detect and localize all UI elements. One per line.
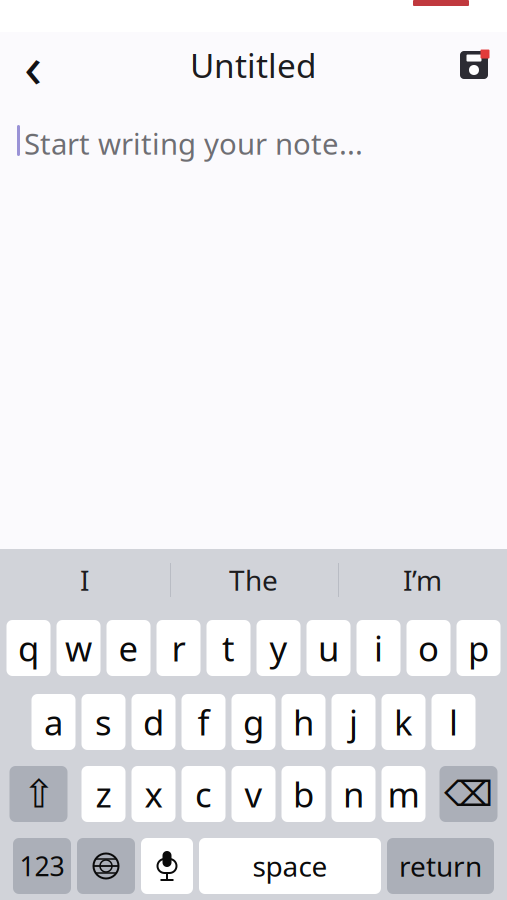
staticText: I’m	[403, 561, 442, 599]
button[interactable]: Delete	[439, 766, 497, 822]
button[interactable]: Shift	[9, 766, 67, 822]
button[interactable]: y	[256, 620, 300, 676]
button[interactable]: Start writing your note...	[0, 98, 507, 549]
staticText: ⇧	[22, 772, 54, 816]
staticText: p	[468, 625, 489, 671]
button[interactable]: o	[406, 620, 450, 676]
button[interactable]: f	[181, 694, 225, 750]
button[interactable]: q	[6, 620, 50, 676]
staticText: o	[418, 625, 439, 671]
staticText: I	[80, 561, 89, 599]
staticText: a	[44, 699, 63, 745]
staticText: s	[95, 699, 112, 745]
button[interactable]: x	[131, 766, 175, 822]
button[interactable]: I	[0, 549, 169, 611]
staticText: f	[197, 699, 209, 745]
staticText: The	[229, 561, 278, 599]
button[interactable]: n	[331, 766, 375, 822]
staticText: x	[144, 771, 162, 817]
button[interactable]: m	[381, 766, 425, 822]
button[interactable]: l	[431, 694, 475, 750]
button[interactable]: I’m	[338, 549, 507, 611]
staticText: d	[143, 699, 164, 745]
button[interactable]: h	[281, 694, 325, 750]
button[interactable]: The	[169, 549, 338, 611]
staticText: Start writing your note...	[24, 124, 363, 163]
button[interactable]: Back	[0, 32, 66, 98]
staticText: Untitled	[190, 43, 317, 87]
button[interactable]: b	[281, 766, 325, 822]
staticText: z	[95, 771, 111, 817]
staticText: t	[222, 625, 235, 671]
staticText: 123	[19, 848, 64, 884]
staticText: e	[118, 625, 138, 671]
staticText: space	[252, 847, 327, 885]
button[interactable]: return	[387, 838, 494, 894]
staticText: i	[374, 625, 383, 671]
staticText: r	[171, 625, 185, 671]
button[interactable]: Dictate	[141, 838, 193, 894]
staticText: return	[399, 847, 482, 885]
button[interactable]: v	[231, 766, 275, 822]
staticText: n	[343, 771, 364, 817]
button[interactable]: z	[81, 766, 125, 822]
staticText: j	[349, 699, 358, 745]
button[interactable]: e	[106, 620, 150, 676]
staticText: b	[293, 771, 314, 817]
staticText: v	[244, 771, 262, 817]
button[interactable]: a	[31, 694, 75, 750]
button[interactable]: i	[356, 620, 400, 676]
button[interactable]: j	[331, 694, 375, 750]
button[interactable]: d	[131, 694, 175, 750]
staticText: w	[65, 625, 92, 671]
button[interactable]: space	[199, 838, 381, 894]
button[interactable]: c	[181, 766, 225, 822]
staticText: h	[293, 699, 314, 745]
button[interactable]: p	[456, 620, 500, 676]
button[interactable]: 123	[13, 838, 71, 894]
button[interactable]: t	[206, 620, 250, 676]
button[interactable]: u	[306, 620, 350, 676]
staticText: m	[387, 771, 419, 817]
staticText: ‹	[24, 26, 42, 104]
button[interactable]: Next keyboard	[77, 838, 135, 894]
button[interactable]: w	[56, 620, 100, 676]
staticText: y	[269, 625, 287, 671]
staticText: u	[318, 625, 339, 671]
button[interactable]: s	[81, 694, 125, 750]
button[interactable]: g	[231, 694, 275, 750]
staticText: l	[449, 699, 458, 745]
button[interactable]: r	[156, 620, 200, 676]
staticText: c	[195, 771, 212, 817]
staticText: k	[394, 699, 413, 745]
button[interactable]: k	[381, 694, 425, 750]
staticText: ⌫	[444, 774, 493, 814]
staticText: q	[18, 625, 39, 671]
staticText: g	[243, 699, 264, 745]
button[interactable]: Save	[441, 32, 507, 98]
